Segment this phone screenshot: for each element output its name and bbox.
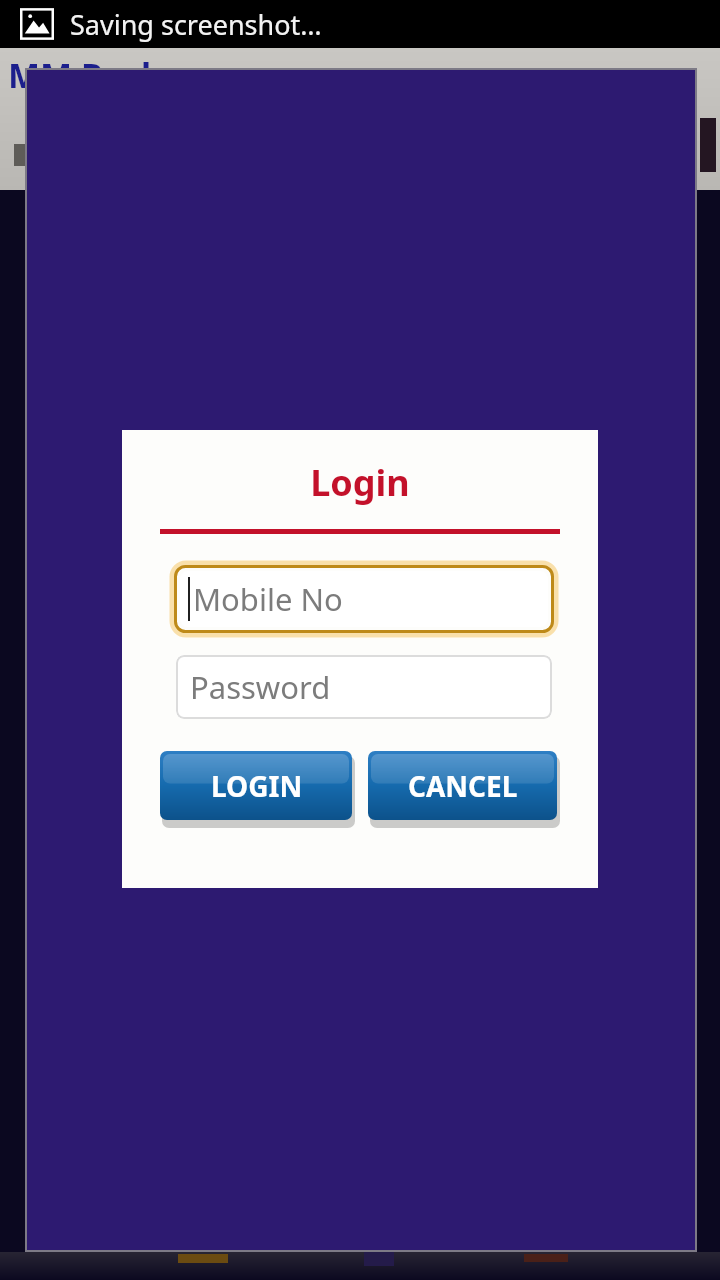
- staticText: LOGIN: [211, 767, 303, 805]
- staticText: Mobile No: [193, 578, 343, 620]
- staticText: Password: [190, 666, 331, 708]
- other: Screenshot saved: [20, 7, 54, 41]
- button[interactable]: Password: [176, 655, 552, 719]
- button[interactable]: CANCEL: [368, 751, 560, 825]
- staticText: MM Recharge: [8, 52, 241, 98]
- staticText: Login: [122, 458, 598, 507]
- button[interactable]: LOGIN: [160, 751, 355, 825]
- staticText: CANCEL: [408, 767, 518, 805]
- staticText: Saving screenshot…: [70, 6, 322, 43]
- button[interactable]: Mobile No: [173, 564, 555, 634]
